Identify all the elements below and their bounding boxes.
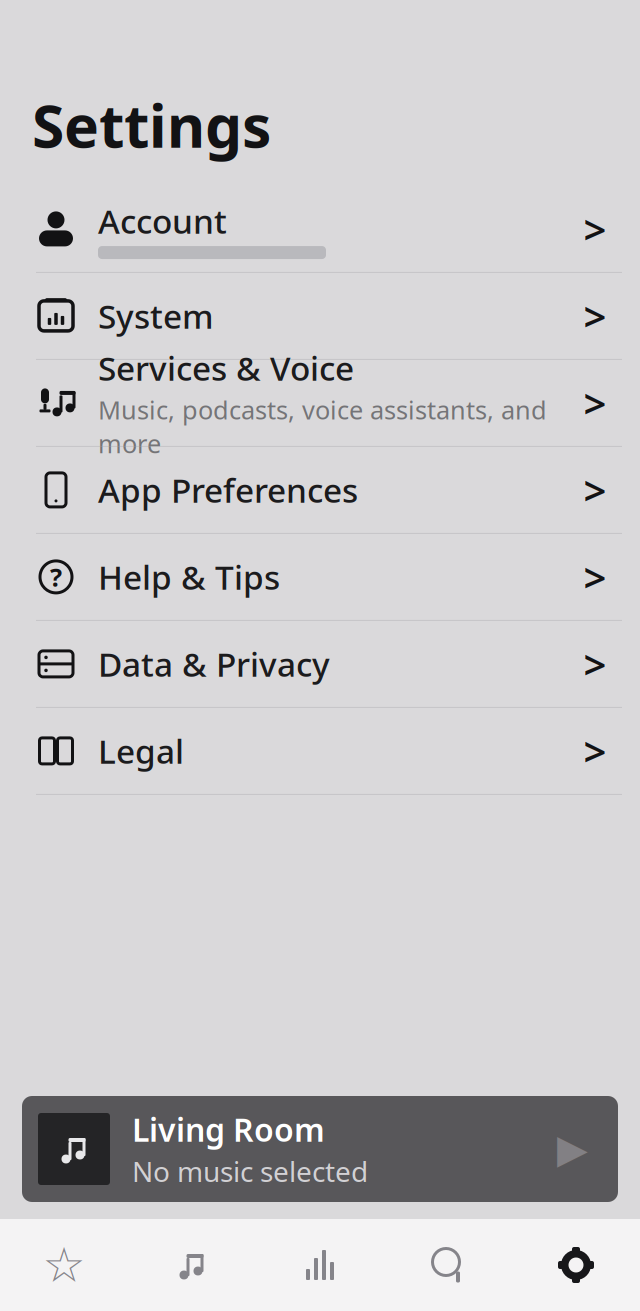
staticText: App Preferences [98, 468, 358, 512]
staticText: Services & Voice [98, 346, 354, 390]
button[interactable]: System [0, 273, 640, 359]
staticText: > [583, 724, 606, 777]
button[interactable]: Favorites [0, 1228, 128, 1302]
staticText: > [583, 637, 606, 690]
staticText: Music, podcasts, voice assistants, and m… [98, 393, 547, 460]
staticText: Settings [32, 86, 271, 164]
staticText: System [98, 294, 214, 338]
button[interactable]: Music [128, 1228, 256, 1302]
button[interactable]: Living Room [22, 1096, 618, 1202]
staticText: Account [98, 199, 227, 243]
staticText: ▶ [557, 1126, 588, 1172]
staticText: Living Room [132, 1108, 325, 1151]
button[interactable]: Search [384, 1228, 512, 1302]
button[interactable]: ? [0, 534, 640, 620]
staticText: > [583, 550, 606, 603]
staticText: Help & Tips [98, 555, 280, 599]
staticText: Data & Privacy [98, 642, 330, 686]
staticText: > [583, 202, 606, 255]
button[interactable]: Legal [0, 708, 640, 794]
staticText: No music selected [132, 1153, 368, 1190]
staticText: Legal [98, 729, 184, 773]
button[interactable]: Data & Privacy [0, 621, 640, 707]
staticText: ? [50, 560, 62, 594]
staticText: > [583, 376, 606, 429]
button[interactable]: App Preferences [0, 447, 640, 533]
button[interactable]: Services & Voice [0, 360, 640, 446]
staticText: > [583, 289, 606, 342]
staticText: ☆ [42, 1238, 85, 1292]
button[interactable]: Account [0, 186, 640, 272]
button[interactable]: Settings [512, 1228, 640, 1302]
button[interactable]: Browse [256, 1228, 384, 1302]
staticText: > [583, 463, 606, 516]
